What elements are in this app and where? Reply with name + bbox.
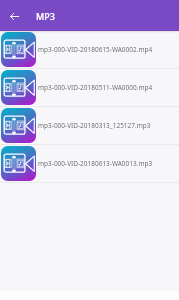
staticText: mp3-000-VID-20180615-WA0002.mp4 — [38, 45, 153, 54]
button[interactable]: mp3-000-VID-20180615-WA0002.mp4 — [0, 31, 179, 68]
button[interactable]: mp3-000-VID-20180511-WA0000.mp4 — [0, 69, 179, 106]
button[interactable]: Back — [3, 5, 25, 27]
staticText: MP3 — [36, 10, 55, 22]
staticText: mp3-000-VID-20180313_125127.mp3 — [38, 121, 151, 130]
button[interactable]: mp3-000-VID-20180313_125127.mp3 — [0, 107, 179, 144]
staticText: mp3-000-VID-20180511-WA0000.mp4 — [38, 83, 153, 92]
button[interactable]: mp3-000-VID-20180613-WA0013.mp3 — [0, 145, 179, 182]
staticText: mp3-000-VID-20180613-WA0013.mp3 — [38, 159, 153, 168]
